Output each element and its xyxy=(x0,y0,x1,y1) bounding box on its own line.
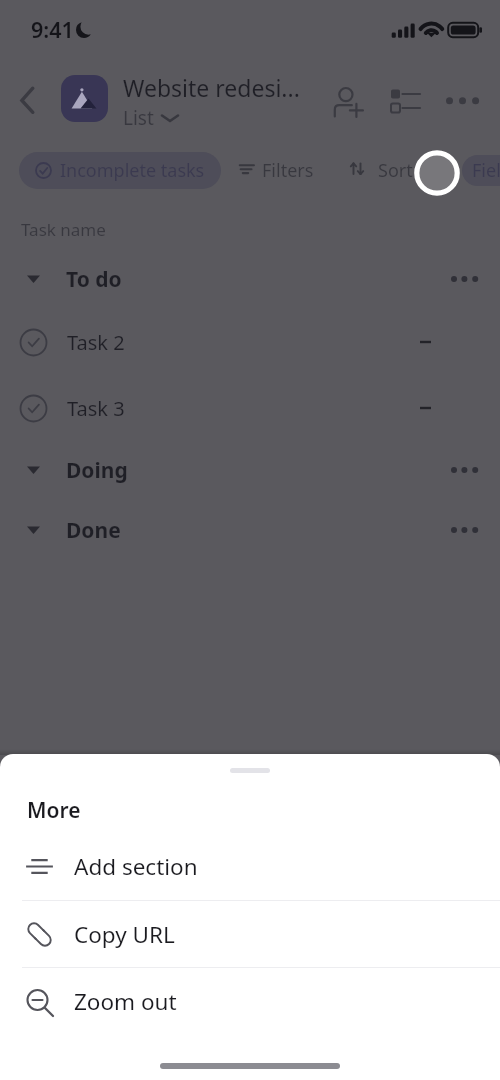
button[interactable]: Copy URL xyxy=(0,901,500,967)
staticText: 9:41 xyxy=(31,15,74,44)
button[interactable]: To do xyxy=(0,247,500,311)
button[interactable]: Back xyxy=(5,80,49,124)
button[interactable]: Sort xyxy=(348,150,413,191)
staticText: Website redesi... xyxy=(123,72,300,103)
button[interactable]: Done xyxy=(0,498,500,562)
button[interactable]: Task 2 xyxy=(0,310,500,374)
button[interactable]: Fields xyxy=(462,155,500,186)
button[interactable]: Incomplete tasks xyxy=(19,152,221,189)
button[interactable]: More options xyxy=(440,80,486,122)
button[interactable]: List options xyxy=(388,80,428,122)
button[interactable]: Task 3 xyxy=(0,376,500,440)
button[interactable]: Add section xyxy=(0,832,500,900)
staticText: Done xyxy=(66,516,121,545)
staticText: Add section xyxy=(74,851,198,882)
staticText: Doing xyxy=(66,456,128,485)
staticText: List xyxy=(123,105,154,131)
staticText: Zoom out xyxy=(74,986,177,1017)
staticText: Task name xyxy=(21,218,106,241)
staticText: More xyxy=(27,796,81,825)
staticText: Copy URL xyxy=(74,919,175,950)
button[interactable]: Filters xyxy=(234,150,314,191)
staticText: Task 2 xyxy=(67,329,125,356)
staticText: To do xyxy=(66,265,122,294)
button[interactable]: Doing xyxy=(0,438,500,502)
button[interactable]: Zoom out xyxy=(0,968,500,1034)
staticText: Incomplete tasks xyxy=(60,158,205,183)
staticText: Sort xyxy=(378,158,413,183)
button[interactable]: Add member xyxy=(330,80,370,122)
staticText: Filters xyxy=(262,158,314,183)
staticText: Fields xyxy=(472,158,500,183)
staticText: Task 3 xyxy=(67,395,125,422)
